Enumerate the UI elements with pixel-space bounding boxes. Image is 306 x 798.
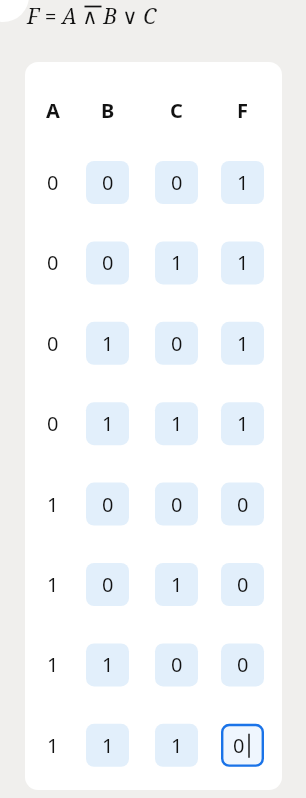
button[interactable]: C value row 2 <box>155 241 198 284</box>
button[interactable]: B value row 8 <box>86 724 129 767</box>
staticText: A <box>46 97 60 124</box>
staticText: 1 <box>102 410 114 437</box>
staticText: 0 <box>233 732 245 759</box>
button[interactable]: F value row 3 <box>221 322 264 365</box>
button[interactable]: F value row 7 <box>221 643 264 686</box>
staticText: 0 <box>171 651 183 678</box>
staticText: 0 <box>102 491 114 518</box>
staticText: 0 <box>47 249 59 276</box>
staticText: 1 <box>237 249 249 276</box>
staticText: 1 <box>171 249 183 276</box>
staticText: 1 <box>237 330 249 357</box>
staticText: 0 <box>171 169 183 196</box>
button[interactable]: B value row 4 <box>86 402 129 445</box>
button[interactable]: C value row 7 <box>155 643 198 686</box>
staticText: C <box>170 97 183 124</box>
button[interactable]: B value row 3 <box>86 322 129 365</box>
staticText: 0 <box>171 491 183 518</box>
staticText: 0 <box>102 249 114 276</box>
button[interactable]: F value row 6 <box>221 563 264 606</box>
staticText: 0 <box>237 571 249 598</box>
staticText: 1 <box>47 491 59 518</box>
button[interactable]: F value row 4 <box>221 402 264 445</box>
button[interactable]: B value row 7 <box>86 643 129 686</box>
button[interactable]: C value row 5 <box>155 483 198 526</box>
staticText: 1 <box>171 732 183 759</box>
button[interactable]: F value row 5 <box>221 483 264 526</box>
button[interactable]: C value row 6 <box>155 563 198 606</box>
staticText: B <box>101 97 115 124</box>
staticText: 1 <box>237 410 249 437</box>
staticText: 1 <box>171 571 183 598</box>
staticText: 0 <box>47 410 59 437</box>
button[interactable]: C value row 1 <box>155 161 198 204</box>
staticText: 0 <box>237 491 249 518</box>
button[interactable]: C value row 4 <box>155 402 198 445</box>
staticText: 0 <box>171 330 183 357</box>
staticText: 1 <box>102 732 114 759</box>
button[interactable]: F value row 1 <box>221 161 264 204</box>
staticText: 1 <box>171 410 183 437</box>
staticText: 0 <box>237 651 249 678</box>
button[interactable]: F value row 2 <box>221 241 264 284</box>
button[interactable]: F value row 8 <box>221 724 264 767</box>
button[interactable]: B value row 5 <box>86 483 129 526</box>
button[interactable]: B value row 6 <box>86 563 129 606</box>
staticText: 0 <box>47 169 59 196</box>
button[interactable]: C value row 3 <box>155 322 198 365</box>
staticText: 1 <box>102 651 114 678</box>
staticText: 1 <box>47 651 59 678</box>
staticText: 1 <box>237 169 249 196</box>
staticText: 0 <box>102 571 114 598</box>
staticText: 1 <box>47 732 59 759</box>
staticText: 1 <box>102 330 114 357</box>
staticText: 1 <box>47 571 59 598</box>
staticText: 0 <box>47 330 59 357</box>
button[interactable]: C value row 8 <box>155 724 198 767</box>
staticText: 0 <box>102 169 114 196</box>
staticText: F <box>237 97 248 124</box>
staticText: F = A ∧ B ∨ C <box>27 2 157 31</box>
button[interactable]: B value row 2 <box>86 241 129 284</box>
button[interactable]: B value row 1 <box>86 161 129 204</box>
